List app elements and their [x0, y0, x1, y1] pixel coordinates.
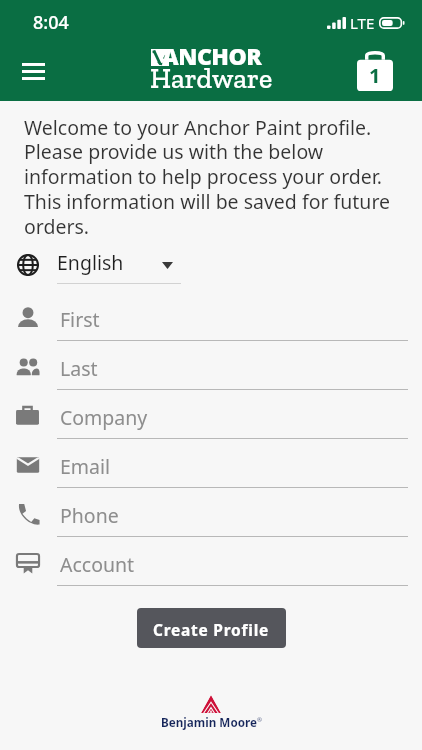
- staticText: Account: [60, 551, 135, 578]
- staticText: Hardware: [150, 62, 273, 96]
- button[interactable]: First: [0, 302, 422, 341]
- staticText: 8:04: [33, 10, 69, 35]
- button[interactable]: Email: [0, 449, 422, 488]
- staticText: ®: [257, 716, 262, 724]
- button[interactable]: Company: [0, 400, 422, 439]
- staticText: Create Profile: [153, 619, 270, 640]
- button[interactable]: Phone: [0, 498, 422, 537]
- staticText: LTE: [350, 13, 375, 33]
- staticText: English: [57, 249, 124, 276]
- staticText: 1: [369, 62, 381, 89]
- staticText: ANCHOR: [162, 40, 262, 71]
- button[interactable]: Create Profile: [137, 608, 286, 648]
- staticText: Phone: [60, 502, 119, 529]
- button[interactable]: Account: [0, 547, 422, 586]
- button[interactable]: Shopping cart with 1 item: [353, 49, 397, 93]
- staticText: First: [60, 306, 100, 333]
- staticText: Company: [60, 404, 148, 431]
- staticText: Benjamin Moore: [161, 714, 257, 730]
- staticText: Welcome to your Anchor Paint profile. Pl…: [24, 114, 391, 240]
- staticText: Last: [60, 355, 98, 382]
- button[interactable]: Last: [0, 351, 422, 390]
- staticText: Email: [60, 453, 111, 480]
- button[interactable]: English: [0, 245, 422, 284]
- button[interactable]: Open navigation menu: [11, 49, 55, 93]
